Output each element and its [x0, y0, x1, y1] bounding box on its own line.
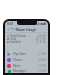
staticText: Total Storage	[10, 34, 27, 37]
staticText: 5.2 GB	[38, 64, 46, 68]
staticText: 84.2 GB	[36, 37, 46, 40]
staticText: 1.3 GB	[38, 69, 46, 73]
button[interactable]: Photos	[5, 57, 48, 63]
staticText: 43.8 GB	[36, 40, 46, 43]
button[interactable]: Play Store	[5, 51, 48, 57]
staticText: 128 GB	[37, 34, 46, 37]
staticText: 9:41	[7, 22, 14, 26]
button[interactable]: Used	[7, 37, 46, 40]
staticText: Show Usage	[16, 27, 37, 32]
staticText: Photos	[13, 58, 23, 62]
staticText: 8.4 GB	[38, 58, 46, 62]
staticText: Messages	[13, 69, 26, 73]
button[interactable]: Music	[5, 63, 48, 69]
button[interactable]: Messages	[5, 69, 48, 73]
staticText: 2.1 GB	[38, 52, 46, 56]
staticText: Available	[10, 40, 21, 43]
staticText: Used	[10, 37, 17, 40]
button[interactable]: Back	[7, 26, 19, 32]
staticText: Music	[13, 64, 21, 68]
staticText: Back	[11, 27, 18, 31]
button[interactable]: Total Storage	[7, 34, 46, 37]
button[interactable]: Available	[7, 40, 46, 43]
staticText: Play Store	[13, 52, 27, 56]
